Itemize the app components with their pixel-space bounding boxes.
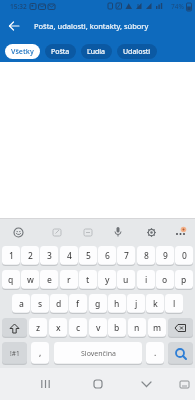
- button[interactable]: c: [69, 318, 87, 338]
- button[interactable]: [0, 219, 36, 245]
- staticText: t: [86, 274, 90, 286]
- button[interactable]: f: [69, 294, 87, 314]
- button[interactable]: 5: [79, 246, 97, 266]
- staticText: h: [114, 298, 120, 310]
- staticText: y: [105, 274, 110, 286]
- button[interactable]: b: [108, 318, 126, 338]
- staticText: v: [96, 322, 101, 334]
- button[interactable]: n: [128, 318, 146, 338]
- button[interactable]: [73, 219, 103, 245]
- button[interactable]: w: [21, 270, 39, 290]
- button[interactable]: Ľudia: [81, 44, 112, 59]
- staticText: Slovenčina: [81, 349, 116, 359]
- button[interactable]: g: [89, 294, 107, 314]
- staticText: Udalosti: [123, 47, 151, 57]
- button[interactable]: Pošta: [45, 44, 76, 59]
- staticText: Ľudia: [87, 47, 106, 57]
- button[interactable]: Pošta, udalosti, kontakty, súbory: [34, 21, 149, 31]
- button[interactable]: 7: [117, 246, 135, 266]
- staticText: s: [38, 298, 43, 310]
- button[interactable]: .: [146, 342, 164, 365]
- staticText: 7: [124, 250, 129, 262]
- button[interactable]: Všetky: [5, 44, 40, 59]
- button[interactable]: 8: [137, 246, 155, 266]
- staticText: Všetky: [11, 47, 34, 57]
- staticText: r: [67, 274, 71, 286]
- staticText: o: [162, 274, 168, 286]
- button[interactable]: [137, 375, 155, 393]
- staticText: x: [56, 322, 61, 334]
- button[interactable]: p: [175, 270, 193, 290]
- staticText: 1: [9, 250, 14, 262]
- button[interactable]: !#1: [2, 342, 27, 365]
- button[interactable]: i: [137, 270, 155, 290]
- staticText: .: [154, 347, 157, 359]
- staticText: l: [173, 298, 176, 310]
- button[interactable]: d: [50, 294, 68, 314]
- button[interactable]: j: [127, 294, 145, 314]
- button[interactable]: [36, 375, 54, 393]
- button[interactable]: 6: [98, 246, 116, 266]
- staticText: n: [134, 322, 140, 334]
- button[interactable]: v: [89, 318, 107, 338]
- button[interactable]: k: [146, 294, 164, 314]
- button[interactable]: [2, 318, 27, 338]
- button[interactable]: u: [117, 270, 135, 290]
- staticText: 2: [28, 250, 33, 262]
- staticText: f: [76, 298, 80, 310]
- button[interactable]: z: [29, 318, 47, 338]
- button[interactable]: q: [2, 270, 20, 290]
- staticText: k: [153, 298, 158, 310]
- button[interactable]: r: [60, 270, 78, 290]
- staticText: 0: [182, 250, 187, 262]
- staticText: u: [123, 274, 129, 286]
- button[interactable]: 1: [2, 246, 20, 266]
- button[interactable]: a: [12, 294, 30, 314]
- staticText: 74%: [171, 2, 184, 11]
- staticText: q: [8, 274, 14, 286]
- staticText: z: [36, 322, 41, 334]
- button[interactable]: 0: [175, 246, 193, 266]
- staticText: 8: [144, 250, 149, 262]
- staticText: 4: [67, 250, 72, 262]
- staticText: e: [47, 274, 52, 286]
- button[interactable]: [136, 219, 166, 245]
- button[interactable]: h: [108, 294, 126, 314]
- staticText: a: [19, 298, 24, 310]
- button[interactable]: 4: [60, 246, 78, 266]
- staticText: 9: [163, 250, 168, 262]
- staticText: 3: [47, 250, 52, 262]
- button[interactable]: Slovenčina: [54, 342, 142, 365]
- button[interactable]: o: [156, 270, 174, 290]
- button[interactable]: [167, 219, 195, 245]
- staticText: w: [27, 274, 34, 286]
- button[interactable]: 2: [21, 246, 39, 266]
- button[interactable]: ,: [31, 342, 49, 365]
- button[interactable]: m: [148, 318, 166, 338]
- staticText: !#1: [10, 349, 20, 358]
- staticText: j: [135, 298, 138, 310]
- button[interactable]: s: [31, 294, 49, 314]
- button[interactable]: e: [40, 270, 58, 290]
- button[interactable]: [168, 342, 193, 365]
- staticText: d: [56, 298, 62, 310]
- button[interactable]: 9: [156, 246, 174, 266]
- staticText: b: [114, 322, 120, 334]
- button[interactable]: [89, 375, 107, 393]
- button[interactable]: x: [49, 318, 67, 338]
- staticText: 15:32: [10, 2, 27, 11]
- button[interactable]: [42, 219, 72, 245]
- button[interactable]: 3: [40, 246, 58, 266]
- button[interactable]: [177, 377, 191, 391]
- button[interactable]: Udalosti: [117, 44, 157, 59]
- staticText: m: [153, 322, 162, 334]
- button[interactable]: [0, 12, 28, 40]
- button[interactable]: [103, 219, 133, 245]
- staticText: p: [181, 274, 187, 286]
- staticText: 6: [105, 250, 110, 262]
- button[interactable]: l: [165, 294, 183, 314]
- staticText: Pošta: [51, 47, 70, 57]
- button[interactable]: y: [98, 270, 116, 290]
- button[interactable]: t: [79, 270, 97, 290]
- button[interactable]: [168, 318, 193, 338]
